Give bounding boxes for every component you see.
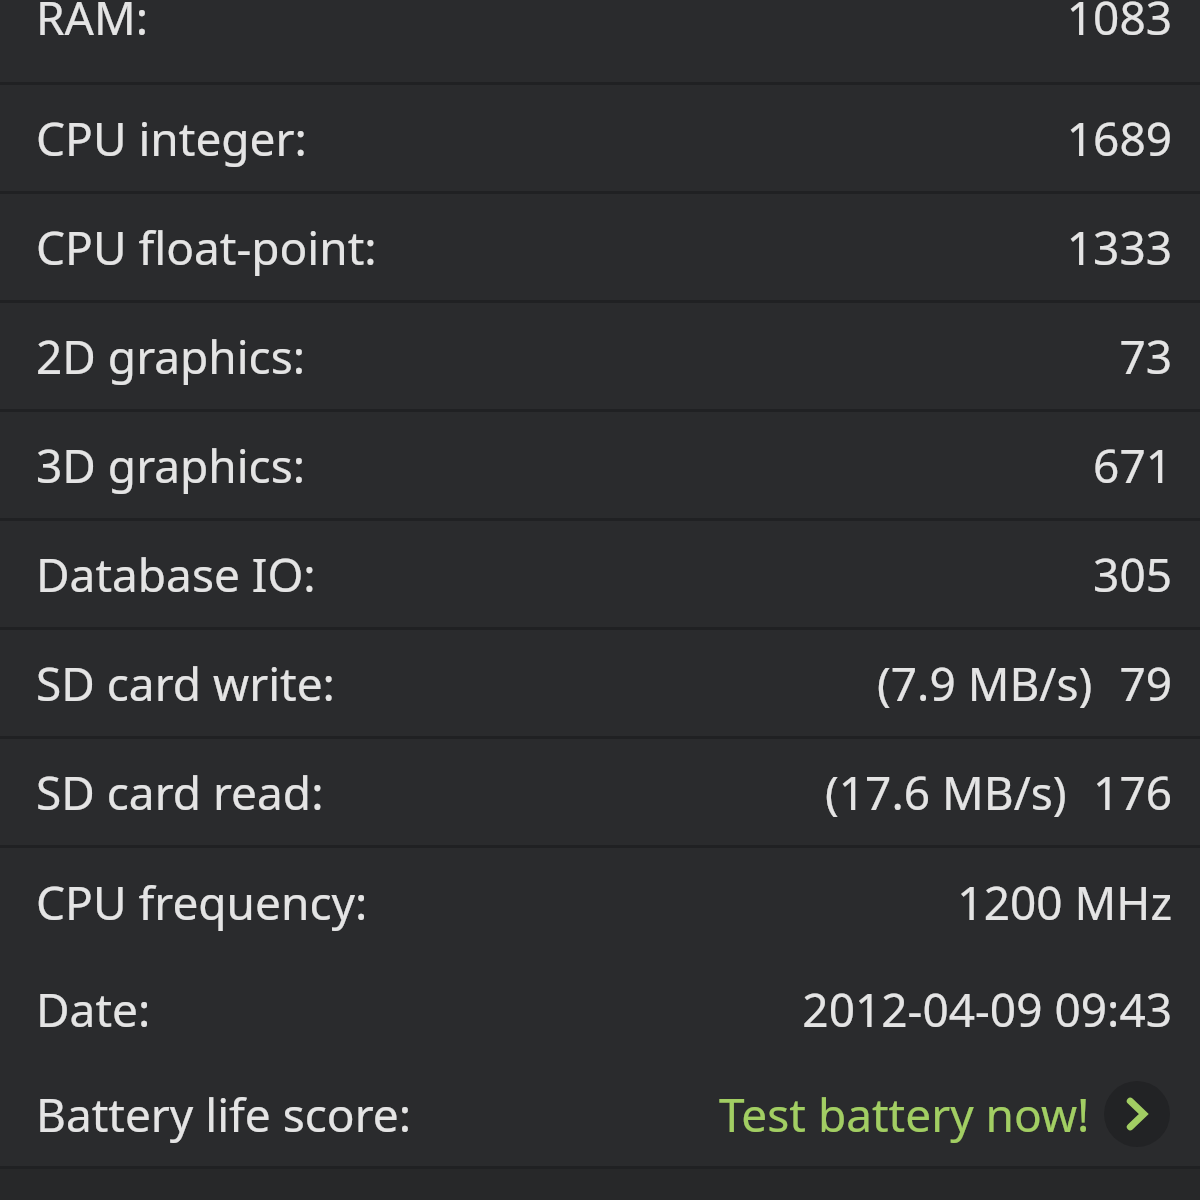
staticText: 79 [1119, 652, 1172, 715]
staticText: 3D graphics: [36, 434, 306, 497]
staticText: 671 [1093, 434, 1172, 497]
staticText: SD card write: [36, 652, 335, 715]
staticText: 1333 [1066, 216, 1172, 279]
staticText: 73 [1119, 325, 1172, 388]
staticText: CPU float-point: [36, 216, 377, 279]
button[interactable]: 2D graphics: [0, 303, 1200, 409]
staticText: Battery life score: [36, 1083, 412, 1146]
staticText: Test battery now! [719, 1083, 1090, 1146]
staticText: 2D graphics: [36, 325, 306, 388]
staticText: 305 [1093, 543, 1172, 606]
staticText: (7.9 MB/s) [877, 652, 1093, 715]
staticText: 1200 MHz [957, 871, 1172, 934]
button[interactable]: CPU float-point: [0, 194, 1200, 300]
button[interactable]: Battery life score: [0, 1062, 1200, 1166]
staticText: 2012-04-09 09:43 [802, 978, 1172, 1041]
staticText: (17.6 MB/s) [825, 761, 1067, 824]
staticText: CPU frequency: [36, 871, 368, 934]
button[interactable]: SD card read: [0, 739, 1200, 845]
staticText: SD card read: [36, 761, 324, 824]
staticText: Date: [36, 978, 151, 1041]
staticText: 176 [1093, 761, 1172, 824]
button[interactable]: RAM: [0, 0, 1200, 82]
staticText: 1689 [1066, 107, 1172, 170]
button[interactable]: Start battery test [1104, 1081, 1170, 1147]
button[interactable]: CPU frequency: [0, 848, 1200, 956]
button[interactable]: 3D graphics: [0, 412, 1200, 518]
button[interactable]: CPU integer: [0, 85, 1200, 191]
button[interactable]: Database IO: [0, 521, 1200, 627]
staticText: CPU integer: [36, 107, 307, 170]
button[interactable]: SD card write: [0, 630, 1200, 736]
staticText: Database IO: [36, 543, 316, 606]
staticText: 1083 [1066, 0, 1172, 49]
button[interactable]: Date: [0, 956, 1200, 1062]
staticText: RAM: [36, 0, 149, 49]
